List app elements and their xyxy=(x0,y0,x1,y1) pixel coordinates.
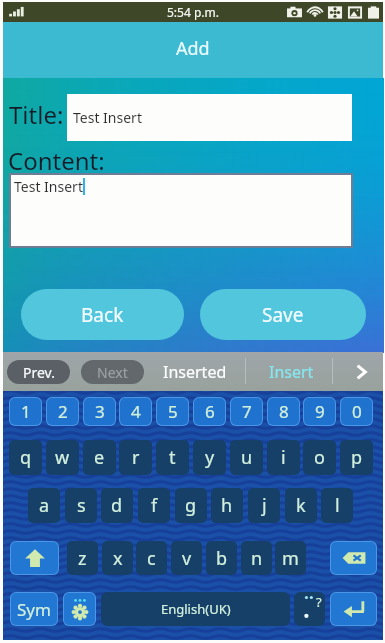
staticText: Insert xyxy=(269,361,314,383)
button[interactable]: Shift xyxy=(11,542,58,574)
staticText: 3 xyxy=(95,400,105,423)
staticText: r xyxy=(132,445,140,470)
button[interactable]: 3 xyxy=(84,398,115,425)
button[interactable]: g xyxy=(175,488,207,523)
button[interactable]: w xyxy=(46,440,79,475)
button[interactable]: Settings xyxy=(64,593,95,625)
button[interactable]: 5 xyxy=(157,398,188,425)
staticText: Title: xyxy=(9,98,64,131)
staticText: 2 xyxy=(58,400,68,423)
staticText: ? xyxy=(316,593,322,611)
button[interactable]: x xyxy=(102,541,133,575)
staticText: 9 xyxy=(315,400,325,423)
staticText: Back xyxy=(81,302,124,328)
staticText: b xyxy=(216,546,228,571)
staticText: q xyxy=(20,445,32,470)
button[interactable]: e xyxy=(83,440,116,475)
staticText: 6 xyxy=(205,400,215,423)
button[interactable]: Prev. xyxy=(7,360,70,384)
staticText: j xyxy=(262,493,267,518)
staticText: Sym xyxy=(17,598,51,621)
button[interactable]: Save xyxy=(200,289,366,340)
button[interactable]: k xyxy=(285,488,317,523)
staticText: g xyxy=(185,493,197,518)
button[interactable]: a xyxy=(28,488,60,523)
button[interactable]: b xyxy=(206,541,237,575)
button[interactable]: Test Insert xyxy=(11,175,351,246)
button[interactable]: t xyxy=(156,440,189,475)
button[interactable]: 4 xyxy=(120,398,151,425)
button[interactable]: m xyxy=(275,541,306,575)
staticText: w xyxy=(55,445,70,470)
button[interactable]: c xyxy=(136,541,167,575)
button[interactable]: y xyxy=(193,440,226,475)
staticText: n xyxy=(251,546,263,571)
staticText: d xyxy=(111,493,123,518)
staticText: Test Insert xyxy=(73,108,142,127)
button[interactable]: 2 xyxy=(47,398,78,425)
button[interactable]: Backspace xyxy=(331,542,376,574)
staticText: c xyxy=(147,546,156,571)
staticText: v xyxy=(182,546,192,571)
staticText: 5:54 p.m. xyxy=(167,4,219,20)
staticText: English(UK) xyxy=(161,600,231,618)
button[interactable]: n xyxy=(241,541,272,575)
staticText: i xyxy=(281,445,286,470)
button[interactable]: 9 xyxy=(304,398,335,425)
button[interactable]: f xyxy=(138,488,170,523)
button[interactable]: o xyxy=(303,440,336,475)
button[interactable]: Back xyxy=(21,289,184,340)
button[interactable]: English(UK) xyxy=(101,592,290,626)
staticText: Add xyxy=(176,36,210,61)
staticText: u xyxy=(241,445,253,470)
staticText: z xyxy=(78,546,87,571)
button[interactable]: v xyxy=(171,541,202,575)
button[interactable]: 0 xyxy=(341,398,372,425)
staticText: h xyxy=(221,493,233,518)
staticText: o xyxy=(314,445,325,470)
button[interactable]: i xyxy=(267,440,300,475)
button[interactable]: More xyxy=(344,356,378,387)
staticText: Next xyxy=(97,363,128,382)
staticText: k xyxy=(296,493,306,518)
staticText: 0 xyxy=(352,400,362,423)
staticText: a xyxy=(39,493,50,518)
button[interactable]: j xyxy=(248,488,280,523)
button[interactable]: s xyxy=(65,488,97,523)
staticText: l xyxy=(335,493,340,518)
staticText: Inserted xyxy=(163,361,227,383)
button[interactable]: Enter xyxy=(331,593,376,625)
button[interactable]: p xyxy=(340,440,373,475)
staticText: Save xyxy=(262,302,304,328)
staticText: p xyxy=(351,445,363,470)
staticText: s xyxy=(77,493,86,518)
staticText: Content: xyxy=(8,144,105,177)
button[interactable]: Punctuation xyxy=(294,592,325,626)
button[interactable]: 1 xyxy=(10,398,41,425)
staticText: e xyxy=(94,445,105,470)
button[interactable]: h xyxy=(211,488,243,523)
button[interactable]: 7 xyxy=(231,398,262,425)
staticText: 1 xyxy=(21,400,31,423)
staticText: t xyxy=(169,445,176,470)
button[interactable]: q xyxy=(9,440,42,475)
button[interactable]: z xyxy=(67,541,98,575)
staticText: m xyxy=(282,546,299,571)
button[interactable]: Insert xyxy=(258,356,324,387)
staticText: 8 xyxy=(279,400,289,423)
button[interactable]: Test Insert xyxy=(67,94,352,141)
button[interactable]: d xyxy=(101,488,133,523)
button[interactable]: u xyxy=(230,440,263,475)
button[interactable]: Sym xyxy=(11,593,57,625)
button[interactable]: Inserted xyxy=(153,356,237,387)
staticText: y xyxy=(205,445,215,470)
staticText: 4 xyxy=(131,400,141,423)
button[interactable]: 8 xyxy=(268,398,299,425)
button[interactable]: Next xyxy=(81,360,144,384)
button[interactable]: l xyxy=(321,488,353,523)
staticText: 5 xyxy=(168,400,178,423)
button[interactable]: r xyxy=(119,440,152,475)
button[interactable]: 6 xyxy=(194,398,225,425)
staticText: x xyxy=(113,546,123,571)
staticText: f xyxy=(151,493,158,518)
